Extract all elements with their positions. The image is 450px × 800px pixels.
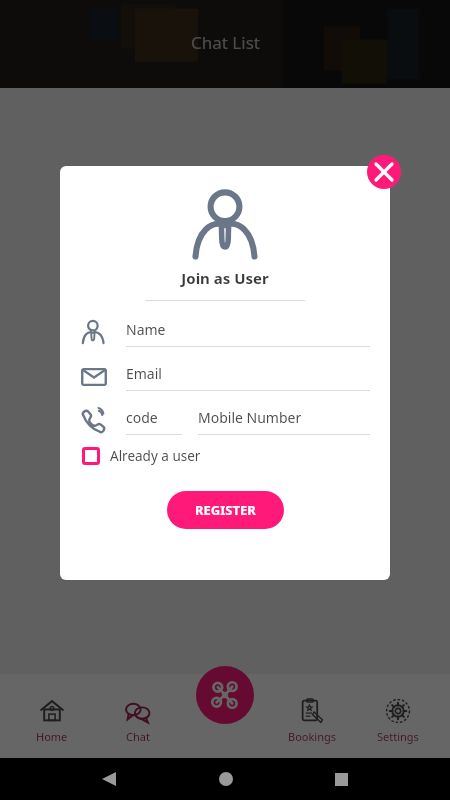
staticText: REGISTER [195,501,256,519]
button[interactable]: Close [367,155,401,189]
staticText: code [126,408,158,427]
staticText: Chat List [191,31,260,54]
button[interactable]: code [80,407,370,435]
button[interactable]: Bookings [277,698,347,744]
button[interactable]: Email [80,363,370,391]
button[interactable]: Name [80,319,370,347]
other: Back [102,772,116,786]
button[interactable]: Settings [363,698,433,744]
button[interactable]: Services [196,666,254,724]
staticText: Already a user [110,447,201,465]
other: Home [219,772,233,786]
button[interactable]: Chat [103,698,173,744]
button[interactable]: Home [17,698,87,744]
staticText: Mobile Number [198,408,302,427]
staticText: Email [126,364,162,383]
staticText: Home [36,729,68,744]
staticText: Join as User [60,268,390,288]
staticText: Name [126,320,166,339]
staticText: Settings [377,729,419,744]
button[interactable]: Already a user [82,447,201,465]
staticText: Bookings [288,729,337,744]
staticText: Chat [126,729,150,744]
button[interactable]: REGISTER [167,491,284,529]
